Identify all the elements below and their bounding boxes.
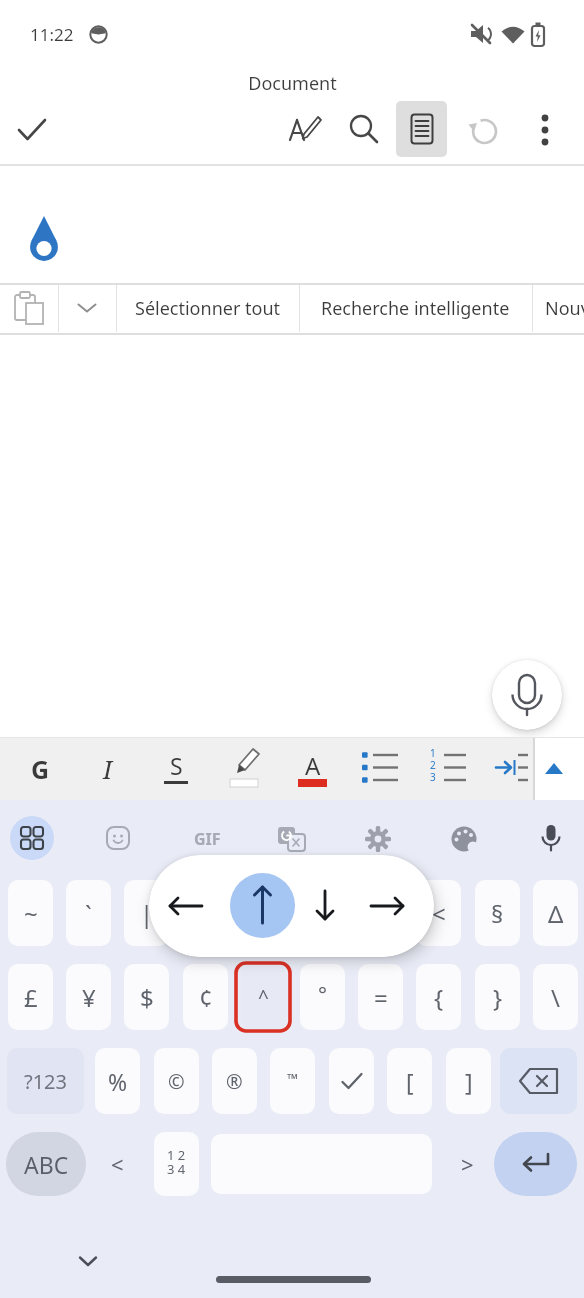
staticText: GIF xyxy=(194,828,221,850)
button[interactable]: GIF xyxy=(186,817,229,860)
button[interactable]: 1 2 xyxy=(154,1132,199,1196)
button[interactable]: Recherche intelligente xyxy=(299,283,532,333)
button[interactable] xyxy=(0,284,58,332)
button[interactable] xyxy=(97,817,140,860)
button[interactable]: % xyxy=(95,1048,140,1114)
button[interactable] xyxy=(300,880,345,946)
staticText: S xyxy=(170,750,183,781)
button[interactable]: > xyxy=(445,1132,490,1196)
staticText: 1 xyxy=(430,746,436,760)
button[interactable] xyxy=(283,108,327,152)
staticText: < xyxy=(111,1149,124,1179)
staticText: Nouveau xyxy=(545,296,584,321)
staticText: Document xyxy=(248,71,337,96)
button[interactable] xyxy=(492,660,562,730)
button[interactable]: ^ xyxy=(241,964,286,1030)
staticText: { xyxy=(434,981,444,1014)
button[interactable] xyxy=(329,1048,374,1114)
staticText: Recherche intelligente xyxy=(321,296,510,321)
button[interactable]: ?123 xyxy=(7,1048,84,1114)
button[interactable] xyxy=(241,880,286,946)
staticText: [ xyxy=(406,1066,414,1097)
staticText: ABC xyxy=(24,1149,69,1180)
button[interactable]: © xyxy=(154,1048,199,1114)
button[interactable] xyxy=(396,101,447,157)
button[interactable] xyxy=(538,752,570,784)
button[interactable]: ~ xyxy=(8,880,53,946)
staticText: % xyxy=(108,1066,128,1097)
button[interactable]: £ xyxy=(8,964,53,1030)
staticText: ^ xyxy=(258,984,269,1010)
button[interactable] xyxy=(490,740,532,797)
button[interactable]: < xyxy=(416,880,461,946)
button[interactable]: \ xyxy=(533,964,578,1030)
staticText: ~ xyxy=(24,897,38,930)
staticText: 3 4 xyxy=(167,1160,186,1178)
button[interactable]: ® xyxy=(212,1048,257,1114)
button[interactable]: [ xyxy=(387,1048,432,1114)
button[interactable] xyxy=(58,284,116,332)
staticText: G xyxy=(31,752,50,786)
button[interactable]: ™ xyxy=(270,1048,315,1114)
staticText: \ xyxy=(551,981,560,1014)
button[interactable]: = xyxy=(358,964,403,1030)
staticText: Sélectionner tout xyxy=(135,296,281,321)
button[interactable] xyxy=(424,740,472,797)
button[interactable]: < xyxy=(95,1132,140,1196)
button[interactable]: G xyxy=(16,740,64,797)
staticText: ?123 xyxy=(24,1068,67,1095)
button[interactable] xyxy=(221,740,269,797)
button[interactable]: I xyxy=(84,740,132,797)
button[interactable] xyxy=(183,880,228,946)
button[interactable] xyxy=(500,1048,577,1114)
staticText: ® xyxy=(226,1068,243,1095)
button[interactable]: $ xyxy=(124,964,169,1030)
button[interactable]: ¢ xyxy=(183,964,228,1030)
button[interactable]: { xyxy=(416,964,461,1030)
button[interactable] xyxy=(494,1132,577,1196)
button[interactable]: ° xyxy=(300,964,345,1030)
button[interactable]: A xyxy=(289,737,337,794)
staticText: 1 2 xyxy=(167,1146,186,1164)
button[interactable] xyxy=(523,108,567,152)
button[interactable]: Δ xyxy=(533,880,578,946)
button[interactable]: Sélectionner tout xyxy=(116,283,299,333)
staticText: Δ xyxy=(548,897,564,930)
staticText: } xyxy=(493,981,503,1014)
staticText: 2 xyxy=(430,758,436,772)
button[interactable] xyxy=(230,873,295,938)
staticText: £ xyxy=(24,981,38,1014)
staticText: ™ xyxy=(287,1069,298,1088)
button[interactable] xyxy=(270,817,313,860)
button[interactable]: ABC xyxy=(6,1132,86,1196)
staticText: ° xyxy=(318,980,327,1009)
button[interactable]: ` xyxy=(66,880,111,946)
button[interactable]: | xyxy=(124,880,169,946)
button[interactable] xyxy=(529,817,572,860)
button[interactable] xyxy=(10,816,54,860)
staticText: § xyxy=(491,897,504,930)
button[interactable]: } xyxy=(475,964,520,1030)
button[interactable]: Nouveau xyxy=(532,283,584,333)
button[interactable] xyxy=(358,880,403,946)
button[interactable] xyxy=(356,740,404,797)
staticText: ¥ xyxy=(82,981,96,1014)
button[interactable] xyxy=(10,108,54,152)
button[interactable]: ¥ xyxy=(66,964,111,1030)
button[interactable]: ] xyxy=(446,1048,491,1114)
staticText: > xyxy=(461,1149,474,1179)
staticText: = xyxy=(374,981,388,1014)
staticText: 11:22 xyxy=(30,23,74,46)
button[interactable] xyxy=(70,1246,106,1276)
button[interactable] xyxy=(342,108,386,152)
button[interactable]: § xyxy=(475,880,520,946)
button[interactable] xyxy=(443,817,486,860)
staticText: ] xyxy=(465,1066,473,1097)
staticText: ¢ xyxy=(199,981,213,1014)
button[interactable]: S xyxy=(152,737,200,794)
staticText: < xyxy=(432,897,446,930)
staticText: A xyxy=(305,749,321,782)
button[interactable] xyxy=(462,108,506,152)
button[interactable] xyxy=(356,817,399,860)
